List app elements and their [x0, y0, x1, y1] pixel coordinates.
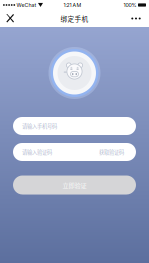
- button[interactable]: Close: [3, 11, 17, 26]
- staticText: 请输入手机号码: [22, 122, 57, 130]
- button[interactable]: 立即验证: [13, 175, 136, 194]
- staticText: 100%: [124, 2, 137, 8]
- staticText: 1:21 AM: [63, 2, 81, 8]
- button[interactable]: More options: [128, 11, 144, 26]
- staticText: WeChat: [17, 2, 37, 8]
- staticText: 立即验证: [62, 181, 86, 189]
- staticText: 绑定手机: [60, 14, 88, 23]
- staticText: 获取验证码: [99, 148, 124, 156]
- button[interactable]: Get verification code: [99, 145, 127, 159]
- staticText: 请输入验证码: [22, 148, 52, 156]
